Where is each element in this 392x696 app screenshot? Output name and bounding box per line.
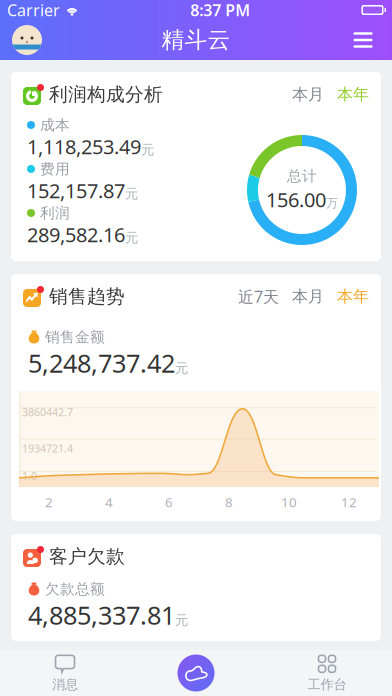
button[interactable]: Profile <box>12 25 42 55</box>
staticText: 3860442.7 <box>22 405 73 419</box>
staticText: 欠款总额 <box>45 580 105 598</box>
staticText: 12 <box>341 493 357 511</box>
staticText: 精斗云 <box>161 26 230 54</box>
staticText: 利润 <box>40 204 70 222</box>
staticText: 总计 <box>287 167 317 185</box>
staticText: 1.0 <box>22 469 37 483</box>
staticText: 4 <box>105 493 113 511</box>
button[interactable]: Menu <box>346 23 380 57</box>
staticText: 销售趋势 <box>49 285 125 308</box>
staticText: 元 <box>175 360 188 377</box>
staticText: 8:37 PM <box>190 0 250 21</box>
staticText: 1,118,253.49 <box>27 133 141 160</box>
staticText: 消息 <box>52 676 78 693</box>
staticText: 利润构成分析 <box>49 83 163 106</box>
staticText: 本月 <box>292 85 324 104</box>
staticText: 152,157.87 <box>27 177 125 204</box>
staticText: 6 <box>165 493 173 511</box>
staticText: Carrier <box>7 0 60 21</box>
button[interactable]: 工作台 <box>262 650 392 696</box>
button[interactable]: 本月 <box>292 287 324 306</box>
staticText: 本年 <box>337 85 369 104</box>
staticText: 本年 <box>337 287 369 306</box>
staticText: 2 <box>45 493 53 511</box>
staticText: 289,582.16 <box>27 221 125 248</box>
staticText: 近7天 <box>238 286 279 307</box>
staticText: 元 <box>175 612 188 629</box>
staticText: 元 <box>125 186 138 202</box>
button[interactable]: 消息 <box>0 650 130 696</box>
staticText: 元 <box>141 142 154 158</box>
staticText: 5,248,737.42 <box>28 346 175 380</box>
staticText: 销售金额 <box>45 328 105 346</box>
button[interactable]: 本年 <box>337 85 369 104</box>
button[interactable]: 近7天 <box>238 286 279 307</box>
staticText: 4,885,337.81 <box>28 598 175 632</box>
button[interactable]: 本月 <box>292 85 324 104</box>
staticText: 156.00 <box>266 186 326 213</box>
staticText: 8 <box>225 493 233 511</box>
staticText: 万 <box>326 196 338 211</box>
staticText: 本月 <box>292 287 324 306</box>
button[interactable]: 本年 <box>337 287 369 306</box>
staticText: 1934721.4 <box>22 441 73 455</box>
staticText: 工作台 <box>307 676 346 693</box>
staticText: 10 <box>281 493 297 511</box>
staticText: 客户欠款 <box>49 545 125 568</box>
button[interactable]: Cloud <box>130 650 262 696</box>
staticText: 元 <box>125 230 138 246</box>
staticText: 成本 <box>40 116 70 134</box>
staticText: 费用 <box>40 160 70 178</box>
